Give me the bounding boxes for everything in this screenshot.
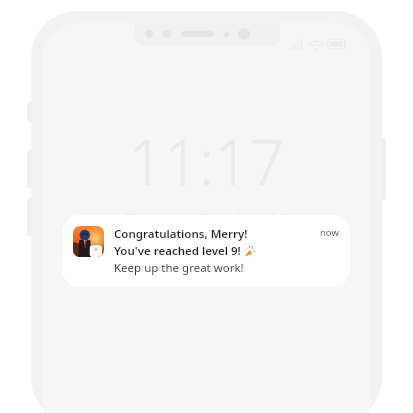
other: App icon [73,226,104,257]
staticText: 11:17 [128,119,285,203]
staticText: Congratulations, Merry! [114,226,248,242]
staticText: You've reached level 9! [114,243,241,259]
button[interactable]: App icon [62,215,350,287]
staticText: Tuesday, October 14 [125,207,288,230]
staticText: now [320,226,339,239]
staticText: Keep up the great work! [114,260,244,276]
